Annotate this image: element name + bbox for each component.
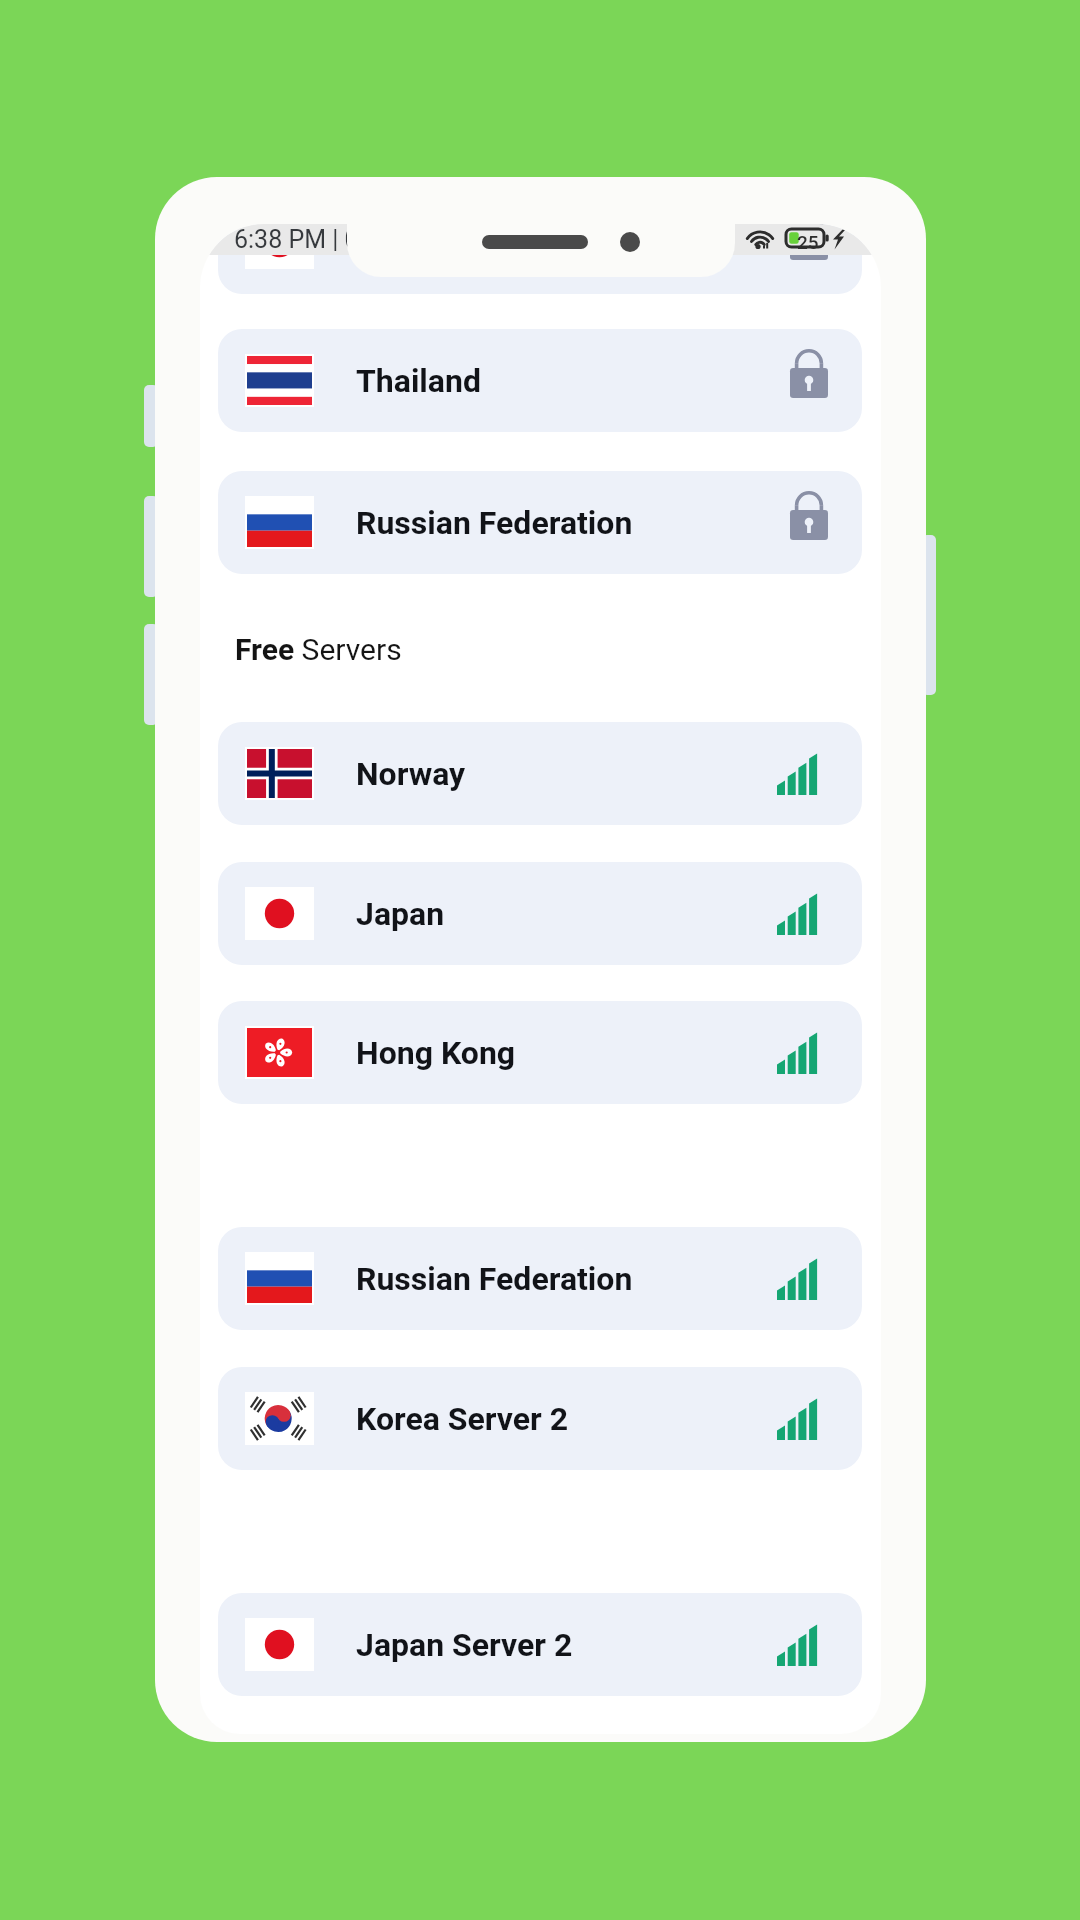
staticText: Russian Federation	[356, 1260, 633, 1298]
button[interactable]: Norway	[218, 722, 862, 825]
button[interactable]: Russian Federation	[218, 1227, 862, 1330]
button[interactable]: Japan	[218, 224, 862, 294]
other: Signal strength	[777, 1624, 817, 1666]
staticText: Norway	[356, 755, 466, 793]
other: Premium locked server	[790, 349, 828, 412]
staticText: Korea Server 2	[356, 1400, 569, 1438]
staticText: 6:38 PM | 0	[234, 225, 359, 254]
staticText: Japan	[356, 895, 445, 933]
other: Premium locked server	[790, 224, 828, 274]
button[interactable]: Japan	[218, 862, 862, 965]
staticText: Japan Server 2	[356, 1626, 573, 1664]
button[interactable]: Korea Server 2	[218, 1367, 862, 1470]
staticText: Free Servers	[235, 632, 402, 667]
staticText: Russian Federation	[356, 504, 633, 542]
button[interactable]: Japan Server 2	[218, 1593, 862, 1696]
other: Signal strength	[777, 893, 817, 935]
other: Signal strength	[777, 1398, 817, 1440]
staticText: Thailand	[356, 362, 481, 400]
staticText: 25	[797, 231, 819, 253]
other: Signal strength	[777, 1258, 817, 1300]
staticText: Hong Kong	[356, 1034, 516, 1072]
other: Premium locked server	[790, 491, 828, 554]
other: Signal strength	[777, 1032, 817, 1074]
button[interactable]: Thailand	[218, 329, 862, 432]
button[interactable]: Hong Kong	[218, 1001, 862, 1104]
other: Signal strength	[777, 753, 817, 795]
button[interactable]: Russian Federation	[218, 471, 862, 574]
